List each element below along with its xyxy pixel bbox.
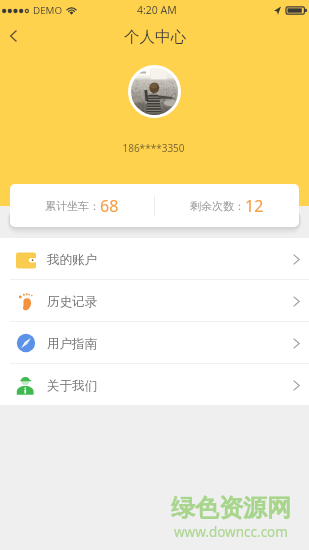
staticText: DEMO (33, 4, 63, 17)
staticText: 累计坐车： (45, 199, 100, 213)
staticText: 4:20 AM (137, 3, 177, 17)
button[interactable]: Back (0, 20, 28, 52)
staticText: 历史记录 (47, 294, 97, 310)
staticText: 68 (100, 195, 119, 217)
staticText: 剩余次数： (190, 199, 245, 213)
staticText: 绿色资源网 (171, 493, 291, 523)
staticText: 186****3350 (0, 141, 308, 155)
button[interactable]: 累计坐车： (10, 184, 154, 227)
button[interactable]: 我的账户 (0, 238, 309, 279)
staticText: 我的账户 (47, 252, 97, 268)
button[interactable]: 历史记录 (0, 280, 309, 321)
button[interactable]: 关于我们 (0, 364, 309, 405)
button[interactable]: 用户指南 (0, 322, 309, 363)
button[interactable]: 剩余次数： (155, 184, 299, 227)
staticText: 关于我们 (47, 378, 97, 394)
staticText: 用户指南 (47, 336, 97, 352)
button[interactable]: Profile photo (128, 65, 181, 118)
staticText: www.downcc.com (174, 523, 288, 541)
staticText: 12 (245, 195, 264, 217)
staticText: 个人中心 (124, 27, 186, 47)
